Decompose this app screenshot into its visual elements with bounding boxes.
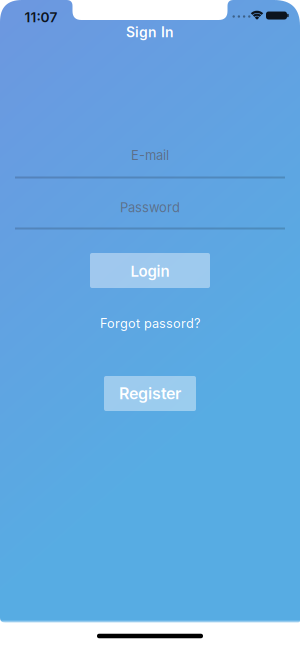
button[interactable]: Password [15, 198, 285, 229]
staticText: Sign In [126, 24, 174, 41]
staticText: Register [119, 384, 181, 403]
staticText: E-mail [131, 147, 169, 163]
staticText: Password [120, 200, 180, 215]
button[interactable]: Register [104, 376, 196, 411]
button[interactable]: E-mail [15, 147, 285, 178]
button[interactable]: Login [90, 253, 210, 288]
button[interactable]: Forgot passord? [100, 316, 200, 331]
staticText: 11:07 [24, 9, 57, 26]
staticText: Login [130, 262, 169, 280]
staticText: Forgot passord? [100, 316, 200, 331]
